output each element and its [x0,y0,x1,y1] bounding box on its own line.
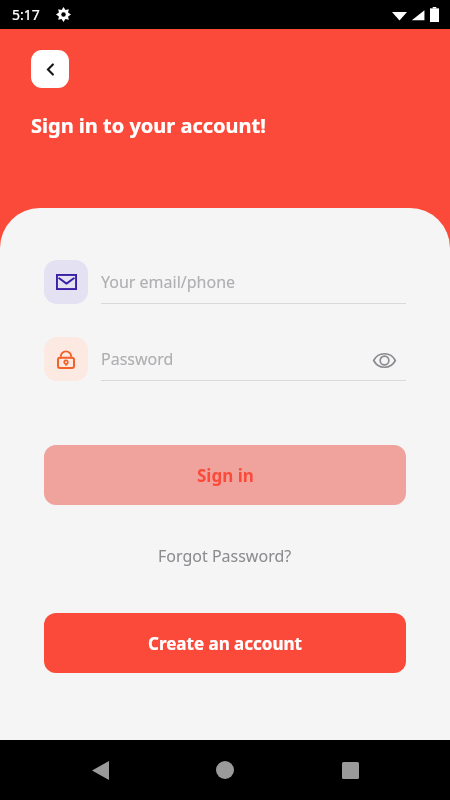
staticText: Forgot Password? [158,545,292,567]
staticText: Create an account [148,632,302,655]
staticText: Your email/phone [101,271,236,293]
button[interactable]: Forgot Password? [0,538,450,574]
staticText: Password [101,348,174,370]
button[interactable]: Home [203,748,247,792]
button[interactable]: Your email/phone [44,260,406,308]
button[interactable]: Back [78,748,122,792]
button[interactable]: Back [31,50,69,88]
staticText: Sign in to your account! [31,112,266,139]
staticText: Sign in [197,464,254,487]
staticText: 5:17 [12,5,40,24]
button[interactable]: Sign in [44,445,406,505]
button[interactable]: Show password [366,342,402,378]
button[interactable]: Recents [328,748,372,792]
button[interactable]: Password [44,337,406,385]
button[interactable]: Create an account [44,613,406,673]
